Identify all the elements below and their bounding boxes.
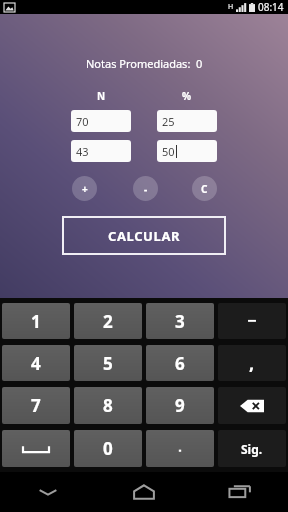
button[interactable]: 3: [146, 303, 214, 339]
button[interactable]: 70: [71, 110, 131, 132]
staticText: 0: [103, 437, 113, 460]
staticText: H: [228, 2, 234, 12]
button[interactable]: 9: [146, 387, 214, 424]
staticText: 7: [31, 394, 41, 417]
staticText: -: [144, 182, 148, 196]
button[interactable]: 6: [146, 345, 214, 381]
staticText: N: [97, 89, 106, 103]
button[interactable]: Home: [96, 472, 192, 512]
button[interactable]: Next: [218, 430, 286, 467]
staticText: 2: [103, 310, 113, 333]
staticText: 9: [175, 394, 185, 417]
button[interactable]: Space: [2, 430, 70, 467]
button[interactable]: 7: [2, 387, 70, 424]
staticText: Notas Promediadas: 0: [86, 56, 203, 71]
staticText: 4: [31, 352, 41, 375]
staticText: CALCULAR: [108, 227, 181, 245]
button[interactable]: CALCULAR: [62, 216, 226, 255]
staticText: 43: [76, 144, 89, 159]
button[interactable]: C: [192, 176, 217, 201]
staticText: 6: [175, 352, 185, 375]
button[interactable]: 43: [71, 140, 131, 162]
button[interactable]: 4: [2, 345, 70, 381]
staticText: 70: [76, 114, 89, 129]
button[interactable]: Back: [0, 472, 96, 512]
button[interactable]: -: [133, 176, 158, 201]
button[interactable]: 1: [2, 303, 70, 339]
button[interactable]: 2: [74, 303, 142, 339]
staticText: 08:14: [258, 0, 284, 14]
button[interactable]: Recent apps: [192, 472, 288, 512]
staticText: C: [201, 182, 208, 196]
button[interactable]: 25: [157, 110, 217, 132]
staticText: 3: [175, 310, 185, 333]
staticText: +: [82, 182, 88, 196]
button[interactable]: 50: [157, 140, 217, 162]
button[interactable]: 0: [74, 430, 142, 467]
staticText: 25: [162, 114, 175, 129]
staticText: 8: [103, 394, 113, 417]
button[interactable]: +: [72, 176, 97, 201]
staticText: %: [182, 89, 192, 103]
staticText: 1: [31, 310, 41, 333]
staticText: 5: [103, 352, 113, 375]
button[interactable]: Period: [146, 430, 214, 467]
staticText: 50: [162, 144, 175, 159]
staticText: ,: [249, 351, 255, 376]
button[interactable]: 8: [74, 387, 142, 424]
button[interactable]: Backspace: [218, 387, 286, 424]
staticText: Sig.: [241, 441, 263, 457]
button[interactable]: Comma: [218, 345, 286, 381]
button[interactable]: Minus: [218, 303, 286, 339]
button[interactable]: 5: [74, 345, 142, 381]
